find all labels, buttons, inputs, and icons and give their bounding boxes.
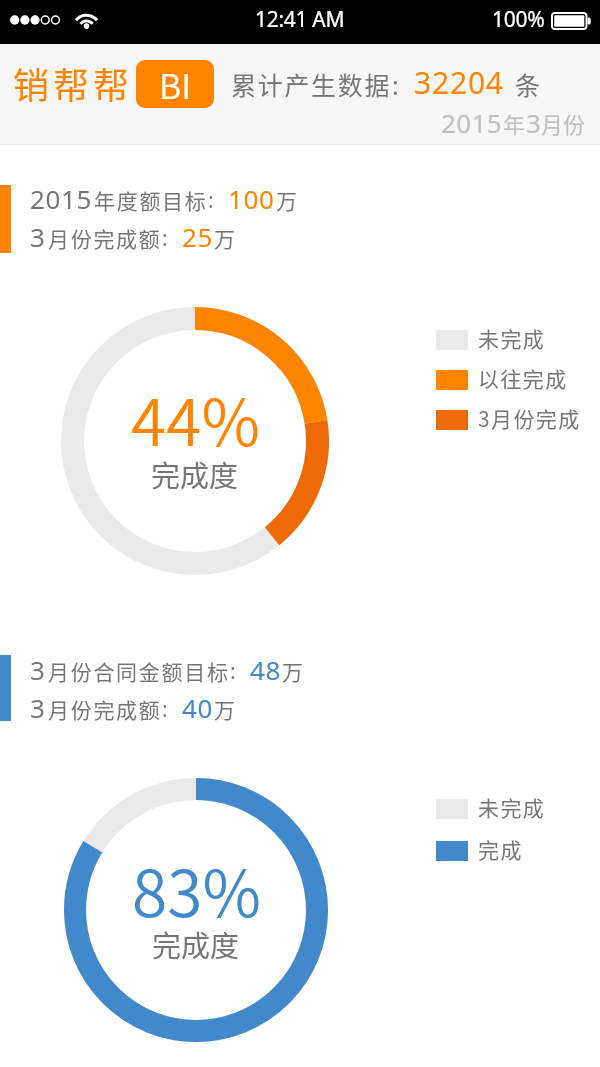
staticText: 2015 xyxy=(441,105,503,140)
staticText: 3 xyxy=(30,219,46,254)
staticText: 年 xyxy=(503,107,526,139)
staticText: 44% xyxy=(131,372,260,465)
staticText: : xyxy=(392,68,399,102)
staticText: : xyxy=(208,186,214,215)
staticText: 月份 xyxy=(541,107,586,139)
staticText: 年度额目标 xyxy=(94,185,208,215)
staticText: BI xyxy=(159,60,191,108)
staticText: 32204 xyxy=(414,62,504,103)
staticText: 万 xyxy=(214,694,235,724)
staticText: 3月份完成 xyxy=(478,403,581,433)
staticText: : xyxy=(162,695,168,724)
staticText: 月份完成额 xyxy=(48,694,162,724)
staticText: 万 xyxy=(214,223,235,253)
staticText: 销帮帮 xyxy=(13,57,134,109)
staticText: 未完成 xyxy=(478,323,546,353)
staticText: 累计产生数据 xyxy=(231,66,392,102)
staticText: 未完成 xyxy=(478,792,546,822)
staticText: 月份合同金额目标 xyxy=(48,656,230,686)
staticText: 月份完成额 xyxy=(48,223,162,253)
staticText: 100% xyxy=(492,5,545,34)
staticText: 以往完成 xyxy=(478,363,568,393)
staticText: 83% xyxy=(132,843,261,936)
staticText: 3 xyxy=(526,105,541,140)
staticText: : xyxy=(230,657,236,686)
staticText: 完成 xyxy=(478,834,523,864)
staticText: 40 xyxy=(182,690,213,725)
staticText: 100 xyxy=(228,181,275,216)
staticText: 条 xyxy=(515,66,541,102)
staticText: 25 xyxy=(182,219,213,254)
staticText: 2015 xyxy=(30,181,92,216)
staticText: 万 xyxy=(276,185,297,215)
staticText: : xyxy=(162,224,168,253)
staticText: 3 xyxy=(30,652,46,687)
staticText: 万 xyxy=(282,656,303,686)
staticText: 完成度 xyxy=(151,453,239,495)
staticText: 48 xyxy=(250,652,281,687)
staticText: 完成度 xyxy=(152,923,240,965)
staticText: 12:41 AM xyxy=(255,5,345,34)
staticText: 3 xyxy=(30,690,46,725)
